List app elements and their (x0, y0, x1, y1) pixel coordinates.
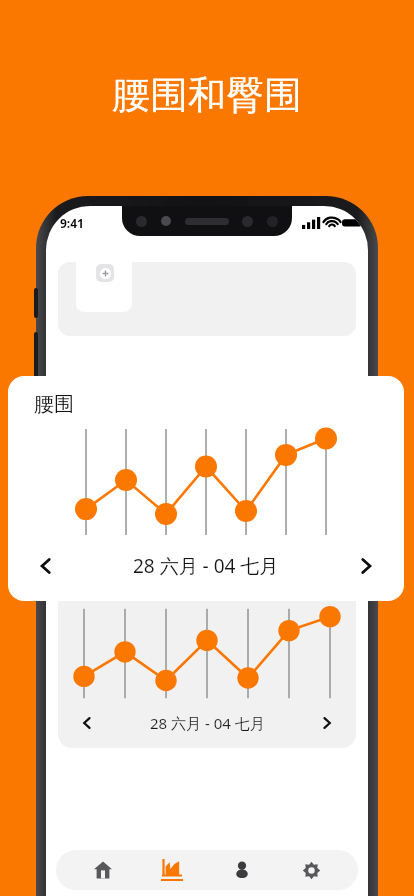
staticText: 28 六月 - 04 七月 (150, 713, 265, 733)
button[interactable] (58, 262, 356, 336)
button[interactable]: Statistics (150, 850, 194, 890)
button[interactable]: Home (81, 850, 125, 890)
button[interactable]: Next week (312, 708, 342, 738)
button[interactable]: Profile (220, 850, 264, 890)
button[interactable]: Previous week (72, 708, 102, 738)
button[interactable]: Settings (289, 850, 333, 890)
button[interactable]: Next week (346, 546, 386, 586)
button[interactable]: Previous week (26, 546, 66, 586)
staticText: 9:41 (60, 215, 84, 231)
staticText: 28 六月 - 04 七月 (133, 553, 279, 579)
staticText: 腰围 (34, 392, 74, 417)
staticText: 腰围和臀围 (112, 71, 302, 119)
button[interactable]: 腰围 (8, 376, 404, 601)
